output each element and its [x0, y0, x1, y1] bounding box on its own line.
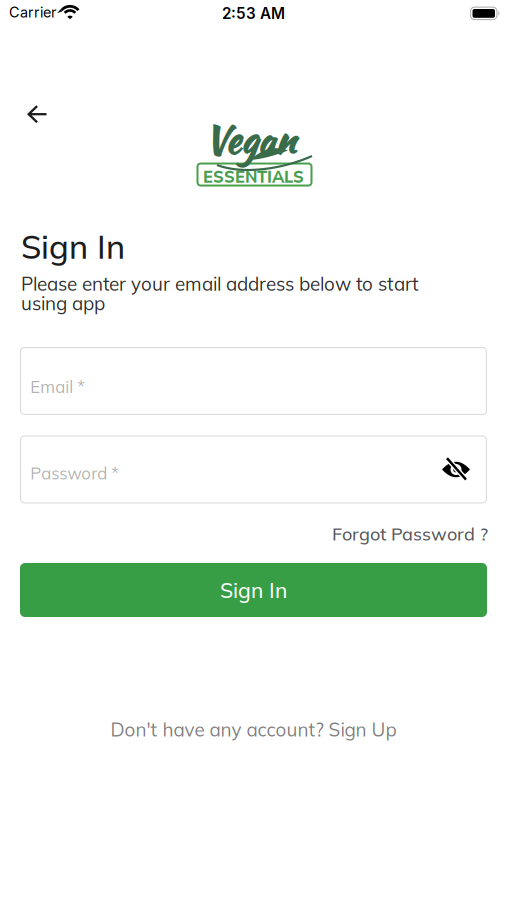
button[interactable]: Sign In	[20, 563, 487, 617]
button[interactable]: Don't have any account? Sign Up	[0, 717, 507, 741]
staticText: Forgot Password ?	[332, 522, 488, 545]
staticText: Sign In	[220, 577, 287, 603]
staticText: Email *	[30, 376, 85, 397]
button[interactable]: Show password	[433, 447, 479, 491]
button[interactable]: Email	[20, 347, 487, 415]
staticText: Please enter your email address below to…	[21, 272, 419, 295]
staticText: Password *	[30, 463, 119, 484]
button[interactable]: Forgot Password ?	[332, 522, 488, 545]
staticText: Sign In	[21, 226, 125, 267]
staticText: using app	[21, 291, 105, 315]
staticText: Don't have any account? Sign Up	[110, 717, 396, 741]
staticText: Vegan	[204, 113, 295, 167]
staticText: ESSENTIALS	[203, 166, 304, 187]
button[interactable]: Back	[18, 98, 56, 131]
staticText: 2:53 AM	[222, 4, 285, 23]
button[interactable]: Password	[20, 435, 487, 503]
staticText: Carrier	[9, 3, 56, 21]
